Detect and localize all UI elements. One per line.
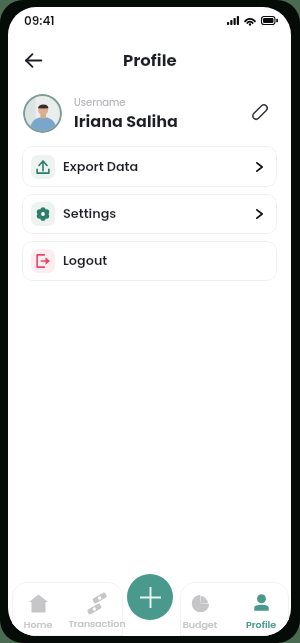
button[interactable]: Back: [17, 44, 49, 76]
button[interactable]: Edit profile: [246, 98, 274, 126]
button[interactable]: Home: [8, 594, 74, 636]
staticText: Budget: [164, 618, 236, 631]
staticText: Profile: [225, 618, 291, 631]
button[interactable]: Add: [127, 574, 173, 620]
button[interactable]: Budget: [164, 594, 236, 636]
staticText: Home: [8, 618, 74, 631]
button[interactable]: Settings: [22, 194, 277, 234]
staticText: Logout: [63, 252, 108, 270]
button[interactable]: Export Data: [22, 146, 277, 187]
staticText: Username: [74, 95, 126, 109]
button[interactable]: Transaction: [61, 595, 133, 636]
staticText: Transaction: [61, 617, 133, 630]
staticText: 09:41: [24, 12, 55, 29]
staticText: Settings: [63, 205, 117, 223]
staticText: Iriana Saliha: [74, 110, 178, 132]
button[interactable]: Profile: [225, 594, 291, 636]
staticText: Profile: [123, 49, 177, 72]
staticText: Export Data: [63, 158, 139, 176]
button[interactable]: Logout: [22, 241, 277, 281]
